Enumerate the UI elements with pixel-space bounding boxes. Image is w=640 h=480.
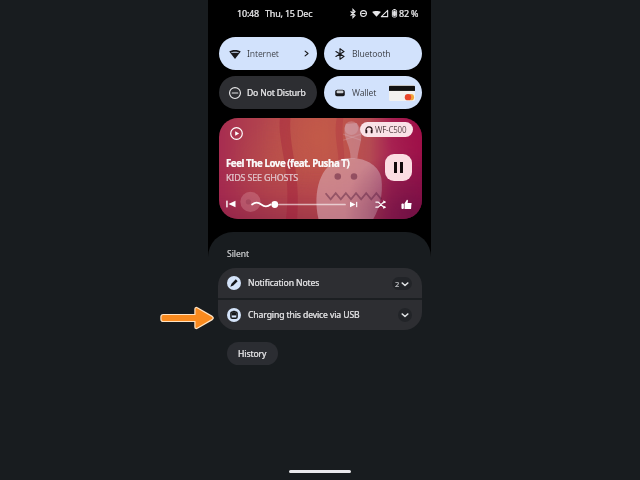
button[interactable]: Pause	[385, 154, 412, 181]
staticText: 10:48	[237, 7, 260, 19]
button[interactable]: Notification Notes	[218, 268, 422, 298]
button[interactable]: Wallet	[324, 76, 422, 109]
staticText: KIDS SEE GHOSTS	[226, 171, 298, 183]
staticText: Feel The Love (feat. Pusha T)	[226, 157, 350, 170]
button[interactable]: Next	[348, 199, 359, 210]
button[interactable]: Expand	[392, 277, 412, 290]
button[interactable]: Previous	[224, 197, 238, 211]
staticText: Do Not Disturb	[247, 87, 306, 99]
staticText: Internet	[247, 48, 279, 60]
staticText: Silent	[227, 248, 250, 260]
staticText: Wallet	[352, 87, 377, 99]
staticText: 82 %	[399, 7, 419, 19]
staticText: WF-C500	[375, 124, 407, 135]
button[interactable]: Expand	[398, 308, 412, 322]
button[interactable]: Internet	[219, 37, 317, 70]
staticText: 2	[395, 279, 400, 289]
staticText: Notification Notes	[248, 277, 320, 289]
staticText: Bluetooth	[352, 48, 391, 60]
button[interactable]: Charging this device via USB	[218, 300, 422, 330]
button[interactable]: Thumbs up	[401, 199, 412, 210]
button[interactable]: Bluetooth	[324, 37, 422, 70]
staticText: Thu, 15 Dec	[265, 7, 313, 19]
button[interactable]: Shuffle	[375, 199, 386, 210]
staticText: History	[238, 348, 267, 360]
button[interactable]: Do Not Disturb	[219, 76, 317, 109]
button[interactable]: WF-C500	[360, 122, 413, 137]
button[interactable]: History	[227, 342, 278, 365]
staticText: Charging this device via USB	[248, 309, 360, 321]
